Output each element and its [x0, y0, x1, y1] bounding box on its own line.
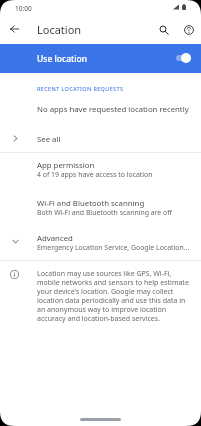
button[interactable]: App permission [0, 153, 201, 191]
staticText: Location may use sources like GPS, Wi-Fi… [37, 269, 191, 323]
staticText: Wi-Fi and Bluetooth scanning [37, 198, 145, 209]
staticText: 4 of 19 apps have access to location [37, 170, 153, 179]
staticText: 10:00 [15, 4, 32, 13]
staticText: App permission [37, 160, 95, 171]
button[interactable]: Use location [0, 44, 201, 73]
button[interactable]: Back [3, 17, 26, 40]
staticText: Advanced [37, 233, 73, 244]
button[interactable]: Advanced [0, 229, 201, 260]
staticText: RECENT LOCATION REQUESTS [37, 85, 124, 92]
staticText: Both Wi-Fi and Bluetooth scanning are of… [37, 208, 172, 217]
button[interactable]: Help [177, 18, 200, 41]
staticText: Emergency Location Service, Google Locat… [37, 243, 190, 252]
staticText: See all [37, 134, 61, 145]
button[interactable]: Search [152, 18, 175, 41]
button[interactable]: See all [0, 126, 201, 152]
staticText: Use location [37, 53, 88, 65]
button[interactable]: Wi-Fi and Bluetooth scanning [0, 191, 201, 229]
staticText: Location [37, 22, 82, 37]
staticText: No apps have requested location recently [37, 104, 189, 115]
